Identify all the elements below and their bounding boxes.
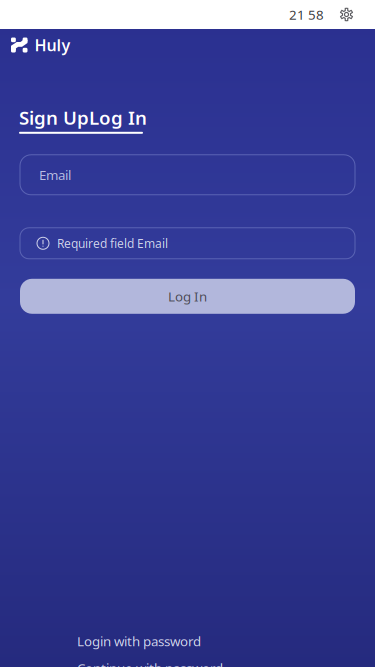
staticText: Log In xyxy=(168,287,207,305)
staticText: Huly xyxy=(34,34,70,56)
staticText: Log In xyxy=(89,105,147,130)
button[interactable]: Continue with password xyxy=(77,657,223,667)
button[interactable]: Sign Up xyxy=(19,105,89,130)
staticText: Email xyxy=(39,166,71,184)
button[interactable]: Login with password xyxy=(77,630,201,652)
staticText: Sign Up xyxy=(19,105,89,130)
staticText: 21 58 xyxy=(289,6,324,23)
button[interactable]: Settings xyxy=(324,2,375,27)
staticText: Login with password xyxy=(77,632,201,650)
button[interactable]: Log In xyxy=(20,279,355,314)
staticText: Continue with password xyxy=(77,659,223,667)
button[interactable]: Log In xyxy=(89,105,147,130)
staticText: Required field Email xyxy=(57,235,168,251)
